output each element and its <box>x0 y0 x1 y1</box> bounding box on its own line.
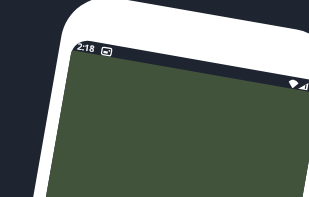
other: Phone mockup <box>0 0 309 197</box>
